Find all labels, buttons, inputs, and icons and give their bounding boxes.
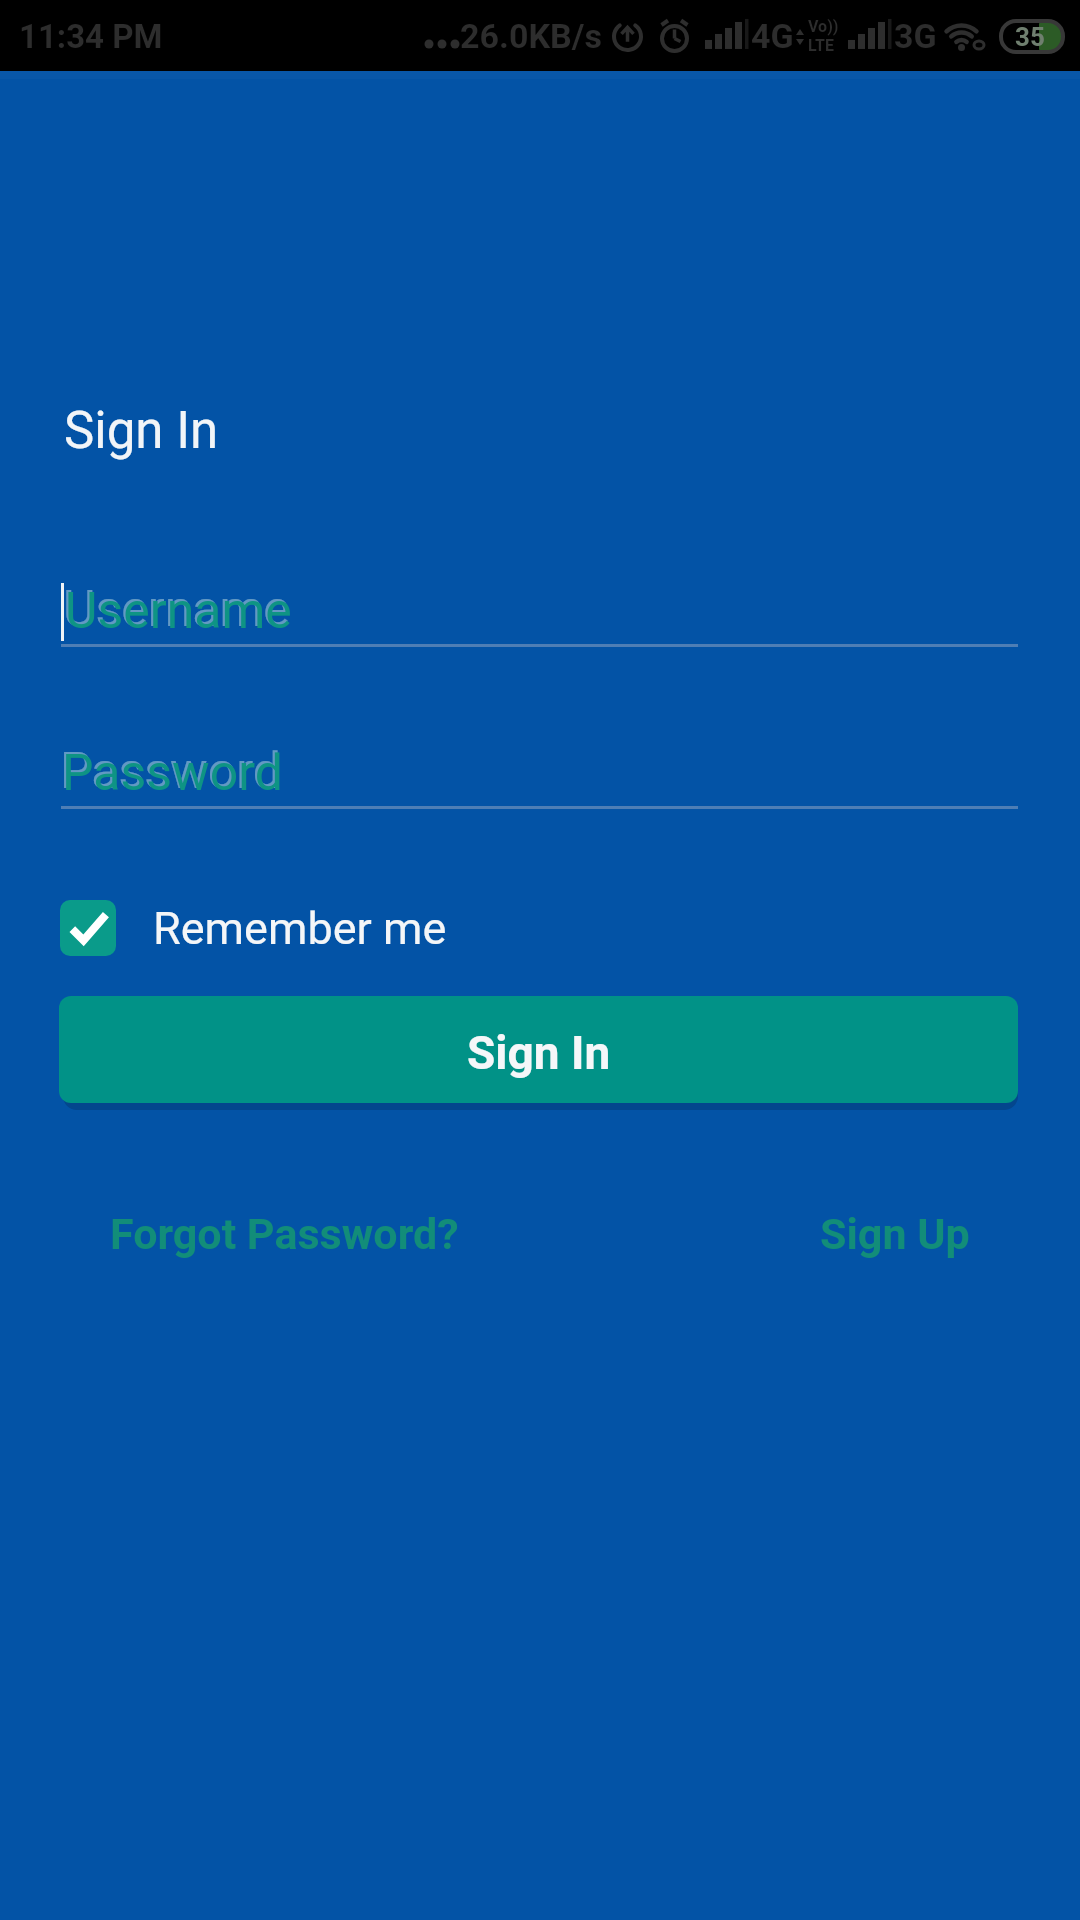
staticText: Vo))	[808, 17, 839, 36]
staticText: Password	[62, 744, 283, 803]
staticText: Sign In	[467, 1026, 611, 1080]
staticText: Sign Up	[820, 1209, 970, 1259]
staticText: 35	[1015, 22, 1045, 52]
staticText: Username	[63, 580, 290, 639]
button[interactable]: Sign In	[59, 996, 1018, 1103]
staticText: 4G	[751, 16, 794, 56]
staticText: Sign In	[64, 401, 219, 461]
staticText: Remember me	[153, 902, 447, 955]
staticText: Forgot Password?	[110, 1209, 459, 1259]
button[interactable]: Forgot Password?	[110, 1209, 459, 1259]
staticText: 3G	[894, 16, 937, 56]
staticText: 11:34 PM	[19, 17, 163, 56]
staticText: 26.0KB/s	[460, 16, 602, 56]
button[interactable]: Sign Up	[820, 1209, 970, 1259]
button[interactable]: Remember me	[60, 900, 447, 956]
staticText: Password	[60, 742, 281, 801]
staticText: Username	[65, 582, 292, 641]
staticText: LTE	[808, 36, 834, 55]
